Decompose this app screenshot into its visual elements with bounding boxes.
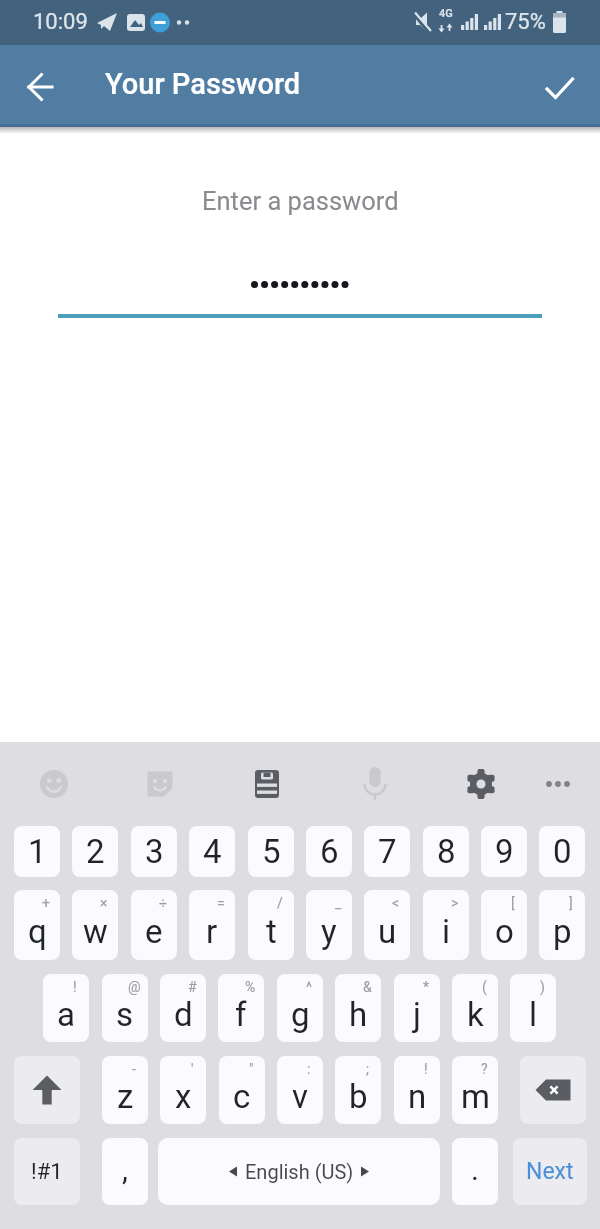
staticText: #	[188, 979, 197, 995]
staticText: ×	[100, 895, 108, 911]
staticText: (	[482, 979, 487, 995]
button[interactable]: v	[277, 1056, 323, 1124]
button[interactable]	[12, 58, 68, 114]
button[interactable]: y	[306, 890, 352, 960]
button[interactable]	[457, 760, 505, 808]
button[interactable]: 4	[189, 826, 235, 877]
staticText: 2	[86, 832, 105, 871]
button[interactable]: 8	[423, 826, 469, 877]
staticText: z	[117, 1077, 134, 1116]
staticText: y	[321, 912, 337, 951]
button[interactable]: b	[335, 1056, 381, 1124]
staticText: c	[233, 1077, 251, 1116]
button[interactable]: 6	[306, 826, 352, 877]
button[interactable]: 7	[364, 826, 410, 877]
staticText: 75%	[505, 9, 546, 35]
staticText: n	[408, 1077, 427, 1116]
staticText: l	[529, 995, 538, 1034]
button[interactable]: u	[364, 890, 410, 960]
button[interactable]: l	[510, 974, 556, 1042]
button[interactable]: 5	[248, 826, 294, 877]
staticText: i	[442, 912, 451, 951]
staticText: ÷	[159, 895, 167, 911]
staticText: +	[42, 895, 50, 911]
button[interactable]	[30, 760, 78, 808]
button[interactable]	[351, 760, 399, 808]
staticText: 9	[495, 832, 514, 871]
button[interactable]: f	[218, 974, 264, 1042]
button[interactable]: a	[43, 974, 89, 1042]
button[interactable]: x	[160, 1056, 206, 1124]
button[interactable]: k	[452, 974, 498, 1042]
staticText: %	[245, 979, 256, 995]
staticText: u	[378, 912, 397, 951]
button[interactable]: n	[394, 1056, 440, 1124]
staticText: s	[116, 995, 134, 1034]
button[interactable]: Next	[513, 1138, 587, 1205]
staticText: English (US)	[245, 1160, 354, 1183]
button[interactable]: h	[335, 974, 381, 1042]
staticText: !	[424, 1061, 428, 1077]
staticText: m	[461, 1077, 490, 1116]
button[interactable]: q	[14, 890, 60, 960]
button[interactable]	[534, 760, 582, 808]
button[interactable]: !#1	[14, 1138, 80, 1205]
staticText: k	[467, 995, 484, 1034]
button[interactable]: z	[102, 1056, 148, 1124]
staticText: =	[217, 895, 225, 911]
button[interactable]: 1	[14, 826, 60, 877]
staticText: ,	[122, 1152, 128, 1187]
button[interactable]: e	[131, 890, 177, 960]
button[interactable]: 2	[72, 826, 118, 877]
staticText: *	[423, 979, 430, 995]
button[interactable]	[57, 250, 543, 318]
staticText: p	[553, 912, 572, 951]
staticText: ;	[366, 1061, 369, 1077]
staticText: "	[249, 1061, 254, 1077]
button[interactable]: m	[452, 1056, 498, 1124]
button[interactable]: English (US)	[158, 1138, 440, 1205]
button[interactable]	[520, 1056, 586, 1124]
button[interactable]: p	[539, 890, 585, 960]
staticText: .	[471, 1152, 479, 1187]
staticText: <	[392, 895, 400, 911]
staticText: d	[174, 995, 193, 1034]
button[interactable]: g	[277, 974, 323, 1042]
staticText: 0	[553, 832, 572, 871]
staticText: !	[73, 979, 77, 995]
staticText: 4G	[439, 7, 453, 20]
staticText: r	[206, 912, 218, 951]
staticText: b	[349, 1077, 368, 1116]
button[interactable]: r	[189, 890, 235, 960]
button[interactable]	[14, 1056, 80, 1124]
staticText: 6	[320, 832, 339, 871]
button[interactable]: ,	[102, 1138, 148, 1205]
staticText: 7	[378, 832, 397, 871]
staticText: g	[291, 995, 310, 1034]
button[interactable]: s	[102, 974, 148, 1042]
staticText: Enter a password	[202, 186, 399, 216]
button[interactable]: 3	[131, 826, 177, 877]
button[interactable]: i	[423, 890, 469, 960]
staticText: -	[132, 1061, 136, 1077]
button[interactable]: 9	[481, 826, 527, 877]
button[interactable]: 0	[539, 826, 585, 877]
button[interactable]	[243, 760, 291, 808]
staticText: '	[191, 1061, 194, 1077]
button[interactable]: t	[248, 890, 294, 960]
button[interactable]	[532, 59, 588, 115]
button[interactable]: j	[394, 974, 440, 1042]
button[interactable]: d	[160, 974, 206, 1042]
staticText: a	[57, 995, 75, 1034]
button[interactable]: .	[452, 1138, 498, 1205]
staticText: j	[413, 995, 421, 1034]
staticText: ]	[569, 895, 573, 911]
staticText: f	[235, 995, 247, 1034]
button[interactable]: o	[481, 890, 527, 960]
staticText: 5	[262, 832, 281, 871]
staticText: !#1	[31, 1159, 63, 1185]
staticText: [	[511, 895, 515, 911]
button[interactable]: w	[72, 890, 118, 960]
button[interactable]	[136, 760, 184, 808]
button[interactable]: c	[219, 1056, 265, 1124]
